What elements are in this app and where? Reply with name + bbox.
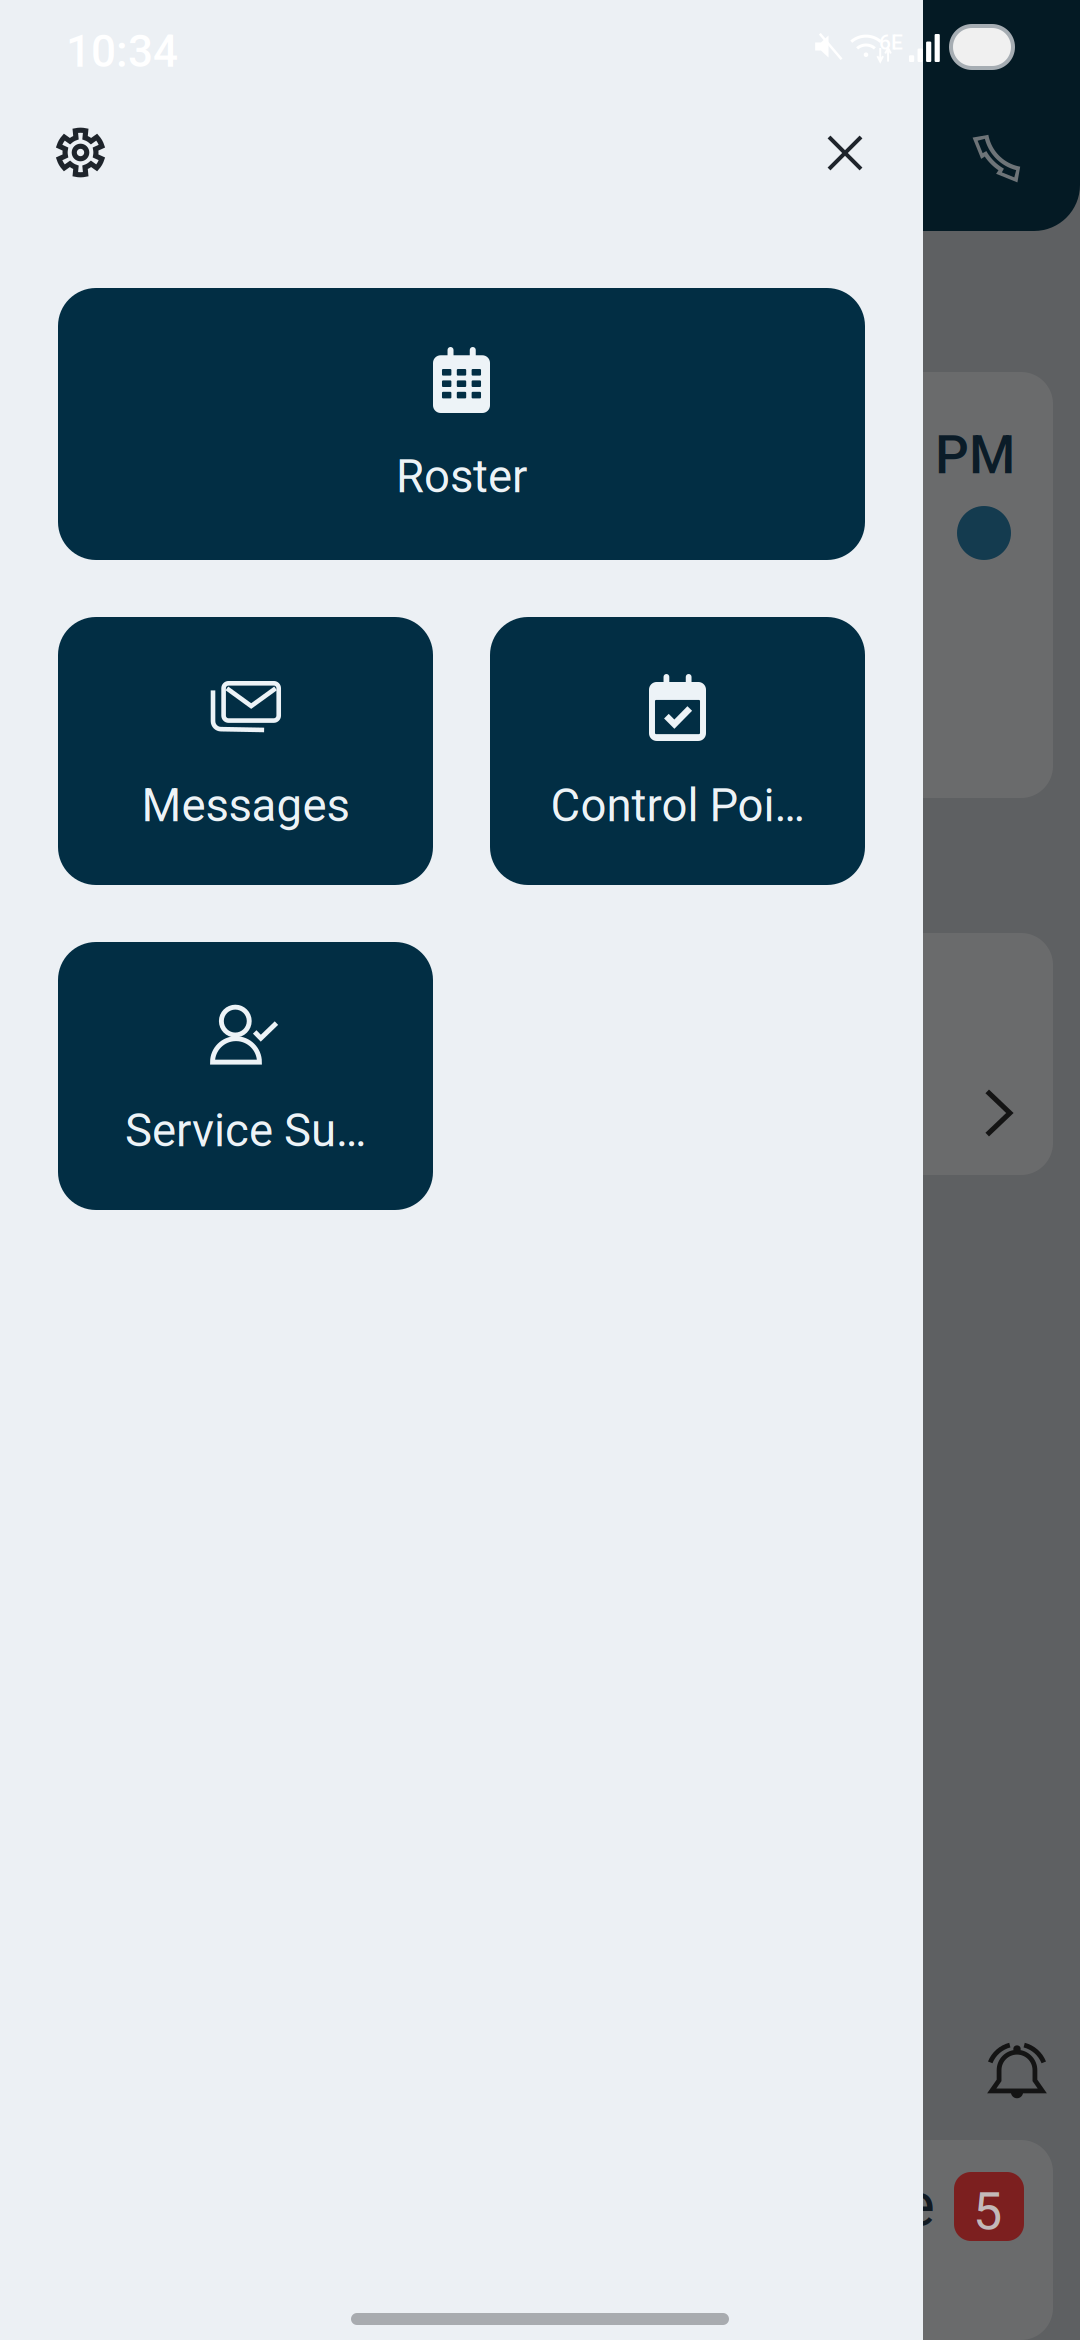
staticText: Messages (141, 779, 349, 832)
button[interactable]: Control Poi… (490, 617, 865, 885)
button[interactable]: Roster (58, 288, 865, 560)
staticText: 6E (879, 30, 903, 55)
button[interactable]: Settings (40, 112, 121, 193)
staticText: 10:34 (66, 26, 178, 78)
staticText: Roster (396, 450, 527, 503)
staticText: e (902, 2168, 935, 2241)
button[interactable]: Service Su… (58, 942, 433, 1210)
staticText: Control Poi… (550, 779, 804, 832)
button[interactable]: Messages (58, 617, 433, 885)
staticText: Service Su… (125, 1104, 366, 1157)
staticText: PM (935, 424, 1015, 486)
staticText: 5 (973, 2181, 1002, 2242)
button[interactable]: Close (804, 112, 886, 194)
